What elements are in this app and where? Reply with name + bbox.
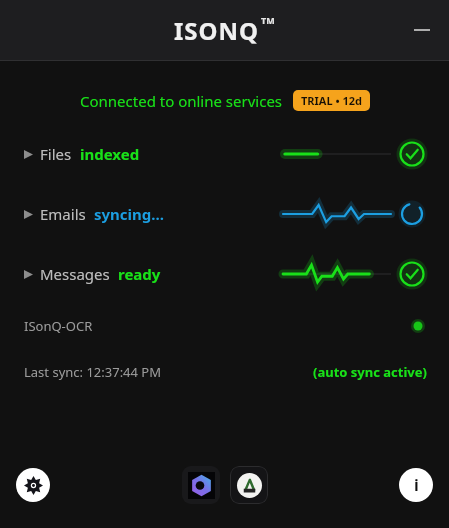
staticText: ISonQ-OCR	[24, 317, 93, 335]
staticText: TRIAL • 12d	[301, 93, 362, 108]
button[interactable]: Messages	[0, 257, 449, 291]
staticText: (auto sync active)	[313, 363, 427, 381]
staticText: Connected to online services	[80, 91, 283, 111]
staticText: Files	[40, 144, 72, 164]
button[interactable]: TRIAL • 12d	[293, 90, 370, 111]
button[interactable]: ISonQ	[230, 466, 268, 504]
button[interactable]: Info	[399, 468, 433, 502]
button[interactable]: ISonQ-OCR	[0, 313, 449, 339]
button[interactable]: Minimize	[405, 13, 439, 47]
staticText: TM	[261, 14, 275, 26]
staticText: ready	[118, 264, 161, 284]
button[interactable]: Files	[0, 137, 449, 171]
staticText: i	[414, 474, 419, 496]
staticText: ISONQ	[174, 14, 260, 47]
staticText: Messages	[40, 264, 110, 284]
staticText: Last sync: 12:37:44 PM	[24, 363, 162, 381]
button[interactable]: Emails	[0, 197, 449, 231]
button[interactable]: Settings	[16, 468, 50, 502]
staticText: Emails	[40, 204, 86, 224]
staticText: syncing...	[94, 204, 164, 224]
button[interactable]: Microsoft 365	[182, 466, 220, 504]
staticText: indexed	[80, 144, 140, 164]
